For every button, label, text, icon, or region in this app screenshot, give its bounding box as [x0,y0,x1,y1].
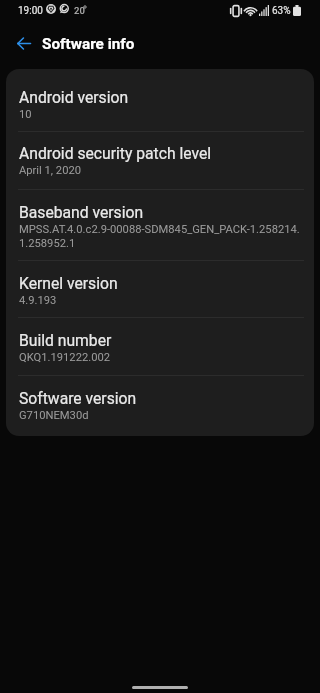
staticText: Software version [19,389,137,407]
staticText: QKQ1.191222.002 [19,351,111,364]
staticText: G710NEM30d [19,409,89,422]
button[interactable]: Navigate back [5,25,42,62]
button[interactable]: Android security patch level [6,132,314,190]
staticText: MPSS.AT.4.0.c2.9-00088-SDM845_GEN_PACK-1… [19,223,300,250]
staticText: Software info [42,35,135,53]
button[interactable]: Android version [6,69,314,132]
staticText: 19:00 [18,5,43,17]
staticText: Kernel version [19,274,118,292]
staticText: Baseband version [19,203,144,221]
staticText: Android version [19,88,129,106]
staticText: 20 [74,5,85,16]
staticText: Android security patch level [19,144,212,162]
button[interactable]: Software version [6,376,314,436]
staticText: 10 [19,108,32,121]
staticText: 63% [272,5,291,17]
staticText: Build number [19,331,112,349]
button[interactable]: Baseband version [6,190,314,261]
staticText: 4.9.193 [19,294,57,307]
button[interactable]: Build number [6,318,314,376]
staticText: April 1, 2020 [19,164,82,177]
button[interactable]: Kernel version [6,261,314,318]
